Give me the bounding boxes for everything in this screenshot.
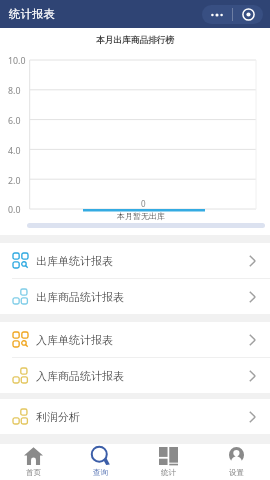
staticText: 0 [141,198,146,209]
staticText: 4.0 [8,145,21,157]
staticText: 入库商品统计报表 [36,369,124,383]
staticText: 本月暂无出库 [117,211,165,221]
staticText: 10.0 [8,55,26,67]
button[interactable]: 利润分析 [0,399,270,434]
button[interactable]: 入库商品统计报表 [0,358,270,393]
staticText: 设置 [229,468,244,477]
staticText: 本月出库商品排行榜 [96,35,175,46]
button[interactable]: 出库单统计报表 [0,243,270,278]
staticText: 8.0 [8,85,21,97]
button[interactable]: 入库单统计报表 [0,322,270,357]
staticText: 查询 [93,468,108,477]
button[interactable]: More options [202,5,263,24]
button[interactable]: 设置 [202,444,270,480]
staticText: 入库单统计报表 [36,333,113,347]
button[interactable]: 首页 [0,444,67,480]
staticText: 6.0 [8,115,21,127]
staticText: 统计报表 [9,7,55,21]
button[interactable]: 出库商品统计报表 [0,279,270,314]
button[interactable]: 查询 [67,444,134,480]
staticText: 出库单统计报表 [36,254,113,268]
staticText: 利润分析 [36,410,80,424]
staticText: 统计 [161,468,176,477]
staticText: 2.0 [8,175,21,187]
staticText: 0.0 [8,204,21,216]
staticText: 出库商品统计报表 [36,290,124,304]
staticText: 首页 [26,468,41,477]
button[interactable]: 统计 [134,444,202,480]
